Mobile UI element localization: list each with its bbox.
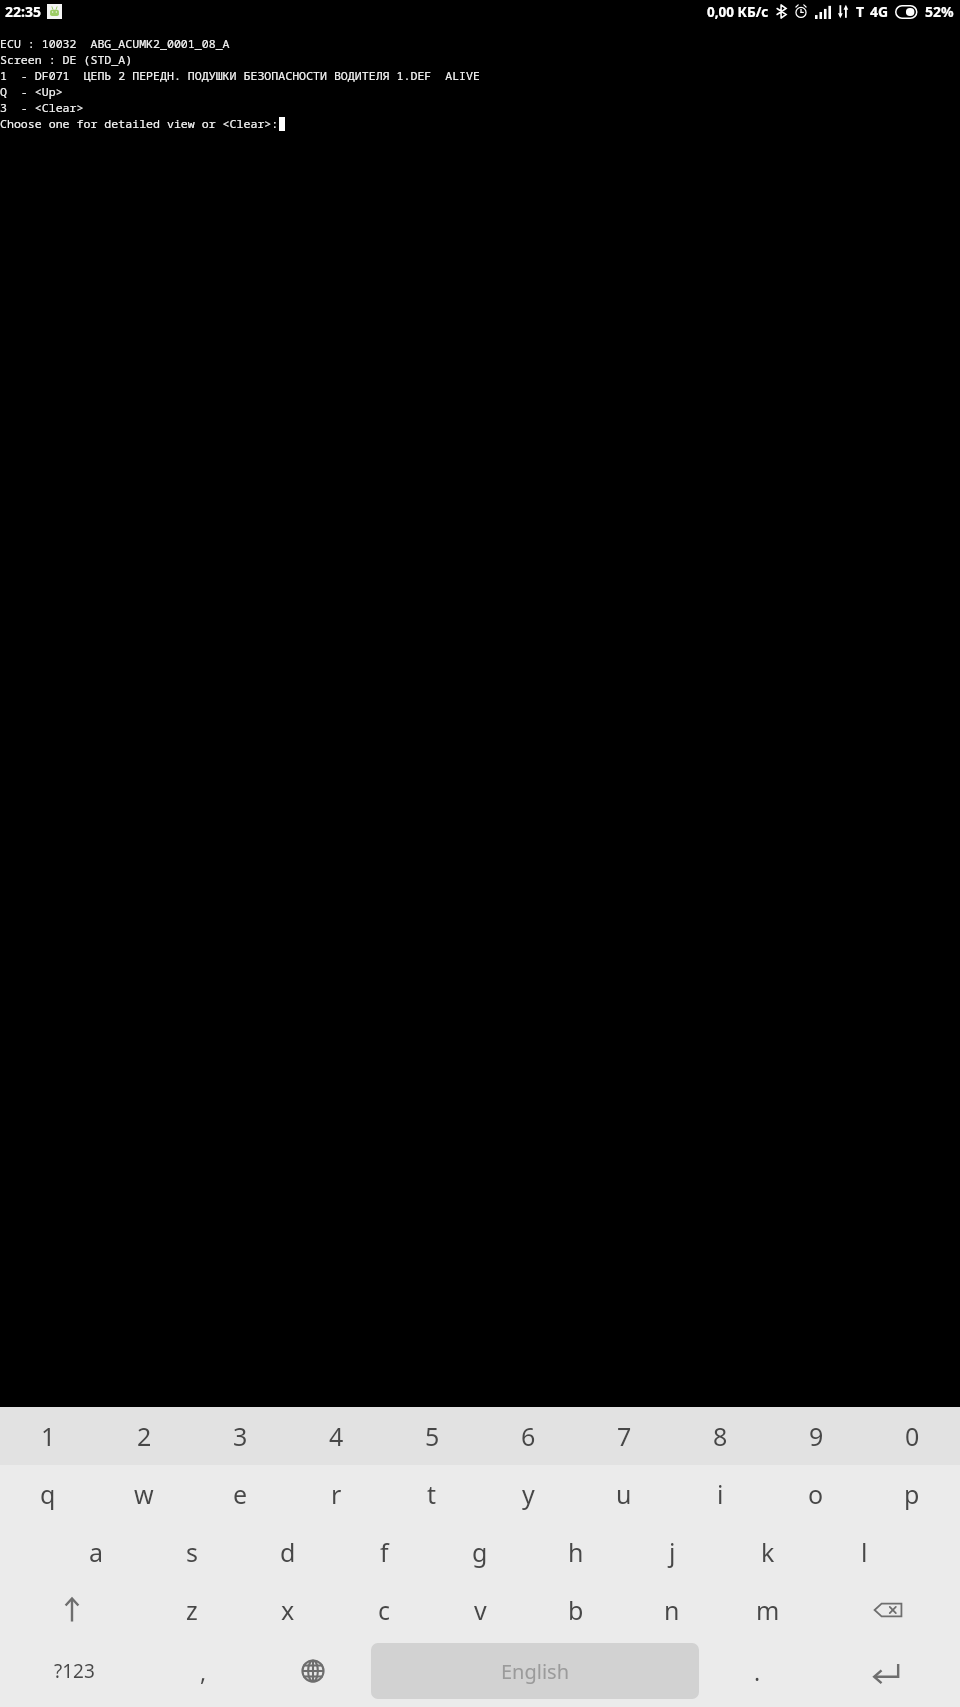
button[interactable]: b: [528, 1581, 624, 1639]
button[interactable]: w: [96, 1465, 192, 1523]
staticText: l: [861, 1535, 868, 1569]
staticText: h: [568, 1535, 584, 1569]
staticText: ECU : 10032 ABG_ACUMK2_0001_08_A: [0, 36, 230, 52]
staticText: Q - <Up>: [0, 84, 63, 100]
button[interactable]: n: [624, 1581, 720, 1639]
button[interactable]: l: [816, 1523, 912, 1581]
button[interactable]: English: [371, 1643, 699, 1699]
staticText: 52%: [925, 2, 954, 21]
staticText: 1: [41, 1419, 56, 1453]
staticText: x: [281, 1593, 295, 1627]
staticText: z: [186, 1593, 198, 1627]
button[interactable]: 2: [96, 1407, 192, 1465]
staticText: g: [472, 1535, 488, 1569]
staticText: 6: [521, 1419, 536, 1453]
button[interactable]: 5: [384, 1407, 480, 1465]
staticText: .: [754, 1656, 761, 1687]
staticText: 9: [809, 1419, 824, 1453]
staticText: English: [501, 1658, 570, 1685]
staticText: 22:35: [5, 2, 41, 21]
button[interactable]: 1: [0, 1407, 96, 1465]
button[interactable]: q: [0, 1465, 96, 1523]
button[interactable]: o: [768, 1465, 864, 1523]
staticText: Choose one for detailed view or <Clear>:: [0, 116, 279, 132]
staticText: 8: [713, 1419, 728, 1453]
staticText: t: [427, 1477, 437, 1511]
staticText: n: [664, 1593, 680, 1627]
staticText: e: [233, 1477, 248, 1511]
staticText: 7: [617, 1419, 632, 1453]
button[interactable]: y: [480, 1465, 576, 1523]
button[interactable]: m: [720, 1581, 816, 1639]
staticText: j: [669, 1535, 676, 1569]
staticText: 0: [905, 1419, 920, 1453]
button[interactable]: 8: [672, 1407, 768, 1465]
button[interactable]: d: [240, 1523, 336, 1581]
staticText: 2: [137, 1419, 152, 1453]
staticText: Screen : DE (STD_A): [0, 52, 133, 68]
staticText: s: [186, 1535, 198, 1569]
button[interactable]: 0: [864, 1407, 960, 1465]
button[interactable]: r: [288, 1465, 384, 1523]
staticText: m: [756, 1593, 780, 1627]
staticText: 0,00 КБ/с: [707, 3, 769, 21]
button[interactable]: 3: [192, 1407, 288, 1465]
button[interactable]: 9: [768, 1407, 864, 1465]
button[interactable]: p: [864, 1465, 960, 1523]
button[interactable]: v: [432, 1581, 528, 1639]
button[interactable]: c: [336, 1581, 432, 1639]
button[interactable]: Enter: [812, 1639, 960, 1703]
staticText: c: [378, 1593, 391, 1627]
button[interactable]: 7: [576, 1407, 672, 1465]
staticText: y: [522, 1477, 535, 1511]
staticText: T: [856, 2, 865, 21]
button[interactable]: g: [432, 1523, 528, 1581]
button[interactable]: Shift: [0, 1581, 144, 1639]
staticText: b: [568, 1593, 584, 1627]
button[interactable]: s: [144, 1523, 240, 1581]
button[interactable]: a: [48, 1523, 144, 1581]
button[interactable]: Change language: [258, 1639, 367, 1703]
button[interactable]: .: [703, 1639, 812, 1703]
button[interactable]: u: [576, 1465, 672, 1523]
button[interactable]: t: [384, 1465, 480, 1523]
staticText: 4: [329, 1419, 344, 1453]
staticText: 1 - DF071 ЦЕПЬ 2 ПЕРЕДН. ПОДУШКИ БЕЗОПАС…: [0, 68, 480, 84]
button[interactable]: ?123: [0, 1639, 149, 1703]
staticText: f: [380, 1535, 389, 1569]
staticText: w: [134, 1477, 154, 1511]
button[interactable]: j: [624, 1523, 720, 1581]
button[interactable]: z: [144, 1581, 240, 1639]
staticText: 5: [425, 1419, 440, 1453]
staticText: u: [616, 1477, 632, 1511]
staticText: 4G: [870, 2, 889, 21]
staticText: d: [280, 1535, 296, 1569]
staticText: i: [717, 1477, 724, 1511]
button[interactable]: 6: [480, 1407, 576, 1465]
staticText: p: [904, 1477, 920, 1511]
button[interactable]: e: [192, 1465, 288, 1523]
staticText: r: [331, 1477, 342, 1511]
staticText: v: [474, 1593, 487, 1627]
staticText: ,: [200, 1656, 207, 1687]
staticText: o: [808, 1477, 824, 1511]
button[interactable]: k: [720, 1523, 816, 1581]
button[interactable]: ,: [149, 1639, 258, 1703]
button[interactable]: h: [528, 1523, 624, 1581]
staticText: q: [40, 1477, 56, 1511]
staticText: 3: [233, 1419, 248, 1453]
button[interactable]: i: [672, 1465, 768, 1523]
button[interactable]: x: [240, 1581, 336, 1639]
staticText: k: [761, 1535, 775, 1569]
staticText: a: [89, 1535, 104, 1569]
button[interactable]: f: [336, 1523, 432, 1581]
button[interactable]: 4: [288, 1407, 384, 1465]
staticText: ?123: [54, 1658, 95, 1684]
staticText: 3 - <Clear>: [0, 100, 84, 116]
button[interactable]: Backspace: [816, 1581, 960, 1639]
